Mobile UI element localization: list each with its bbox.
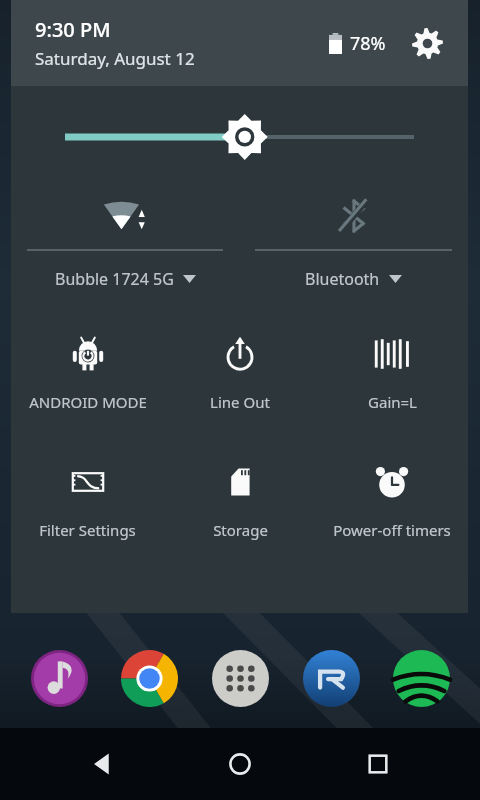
- staticText: Storage: [213, 520, 268, 540]
- button[interactable]: Music: [27, 646, 91, 710]
- staticText: Bluetooth: [305, 268, 380, 290]
- staticText: 78%: [350, 31, 386, 56]
- other: Battery 78 percent: [329, 33, 342, 54]
- button[interactable]: Line Out: [164, 312, 316, 440]
- staticText: Filter Settings: [39, 520, 136, 540]
- staticText: 9:30 PM: [35, 16, 111, 43]
- button[interactable]: Gain=L: [316, 312, 468, 440]
- staticText: Power-off timers: [333, 520, 451, 540]
- button[interactable]: Brightness: [11, 86, 468, 182]
- button[interactable]: Power-off timers: [316, 440, 468, 568]
- button[interactable]: Recents: [343, 729, 413, 799]
- button[interactable]: ANDROID MODE: [11, 312, 164, 440]
- staticText: Gain=L: [368, 392, 417, 412]
- button[interactable]: Home: [205, 729, 275, 799]
- button[interactable]: Back: [68, 729, 138, 799]
- button[interactable]: Settings: [406, 22, 448, 64]
- button[interactable]: Storage: [164, 440, 316, 568]
- button[interactable]: All apps: [208, 646, 272, 710]
- button[interactable]: Bubble 1724 5G: [11, 182, 239, 312]
- button[interactable]: Spotify: [389, 646, 453, 710]
- button[interactable]: Chrome: [117, 646, 181, 710]
- staticText: Bubble 1724 5G: [55, 268, 174, 290]
- staticText: ANDROID MODE: [29, 392, 147, 412]
- staticText: Saturday, August 12: [35, 47, 195, 70]
- button[interactable]: Filter Settings: [11, 440, 164, 568]
- staticText: Line Out: [210, 392, 270, 412]
- button[interactable]: R app: [299, 646, 363, 710]
- button[interactable]: Bluetooth: [239, 182, 468, 312]
